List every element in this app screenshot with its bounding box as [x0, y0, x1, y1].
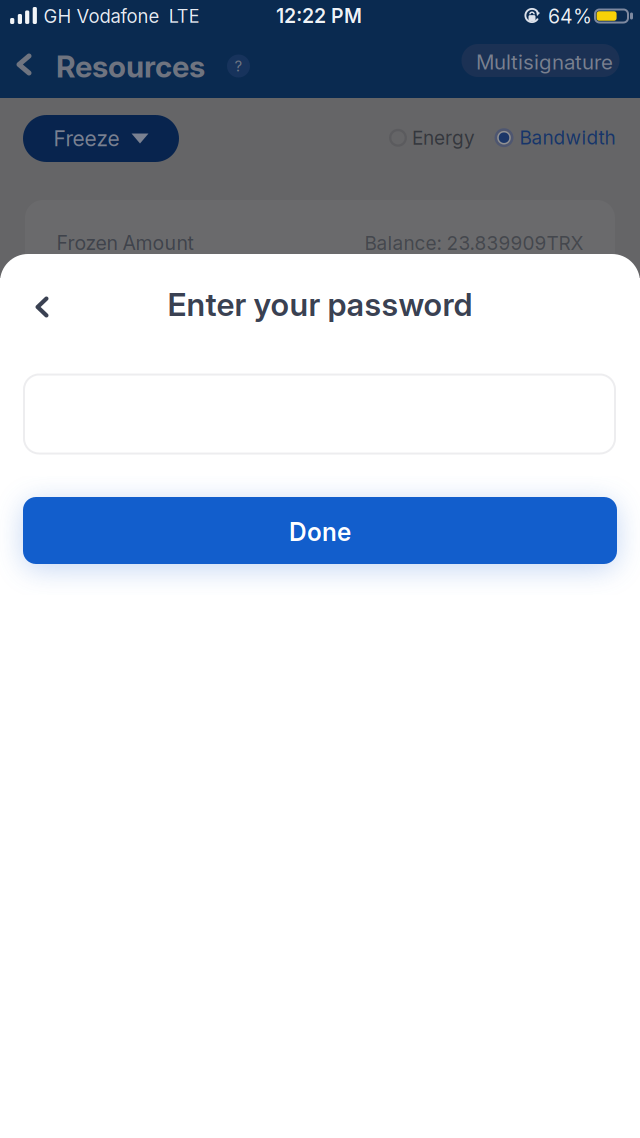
staticText: 64%: [548, 4, 592, 28]
staticText: Done: [289, 517, 351, 547]
staticText: Multisignature: [476, 50, 613, 74]
button[interactable]: Bandwidth: [494, 126, 615, 149]
staticText: Frozen Amount: [56, 231, 193, 255]
staticText: 12:22 PM: [276, 4, 362, 28]
button[interactable]: Back: [35, 296, 48, 317]
button[interactable]: Done: [23, 497, 617, 564]
staticText: Resources: [56, 48, 205, 85]
staticText: Balance: 23.839909TRX: [364, 231, 583, 254]
button[interactable]: Freeze: [23, 115, 179, 162]
staticText: Enter your password: [167, 285, 472, 323]
button[interactable]: Help: [227, 54, 250, 77]
button[interactable]: Energy: [389, 126, 475, 149]
staticText: Freeze: [53, 126, 119, 151]
button[interactable]: Password: [23, 373, 616, 454]
staticText: Energy: [412, 126, 475, 149]
staticText: GH Vodafone: [43, 5, 159, 27]
button[interactable]: Multisignature: [461, 44, 619, 77]
staticText: LTE: [169, 5, 200, 27]
button[interactable]: Back: [16, 53, 31, 75]
staticText: ?: [234, 57, 242, 75]
staticText: Bandwidth: [519, 126, 615, 149]
